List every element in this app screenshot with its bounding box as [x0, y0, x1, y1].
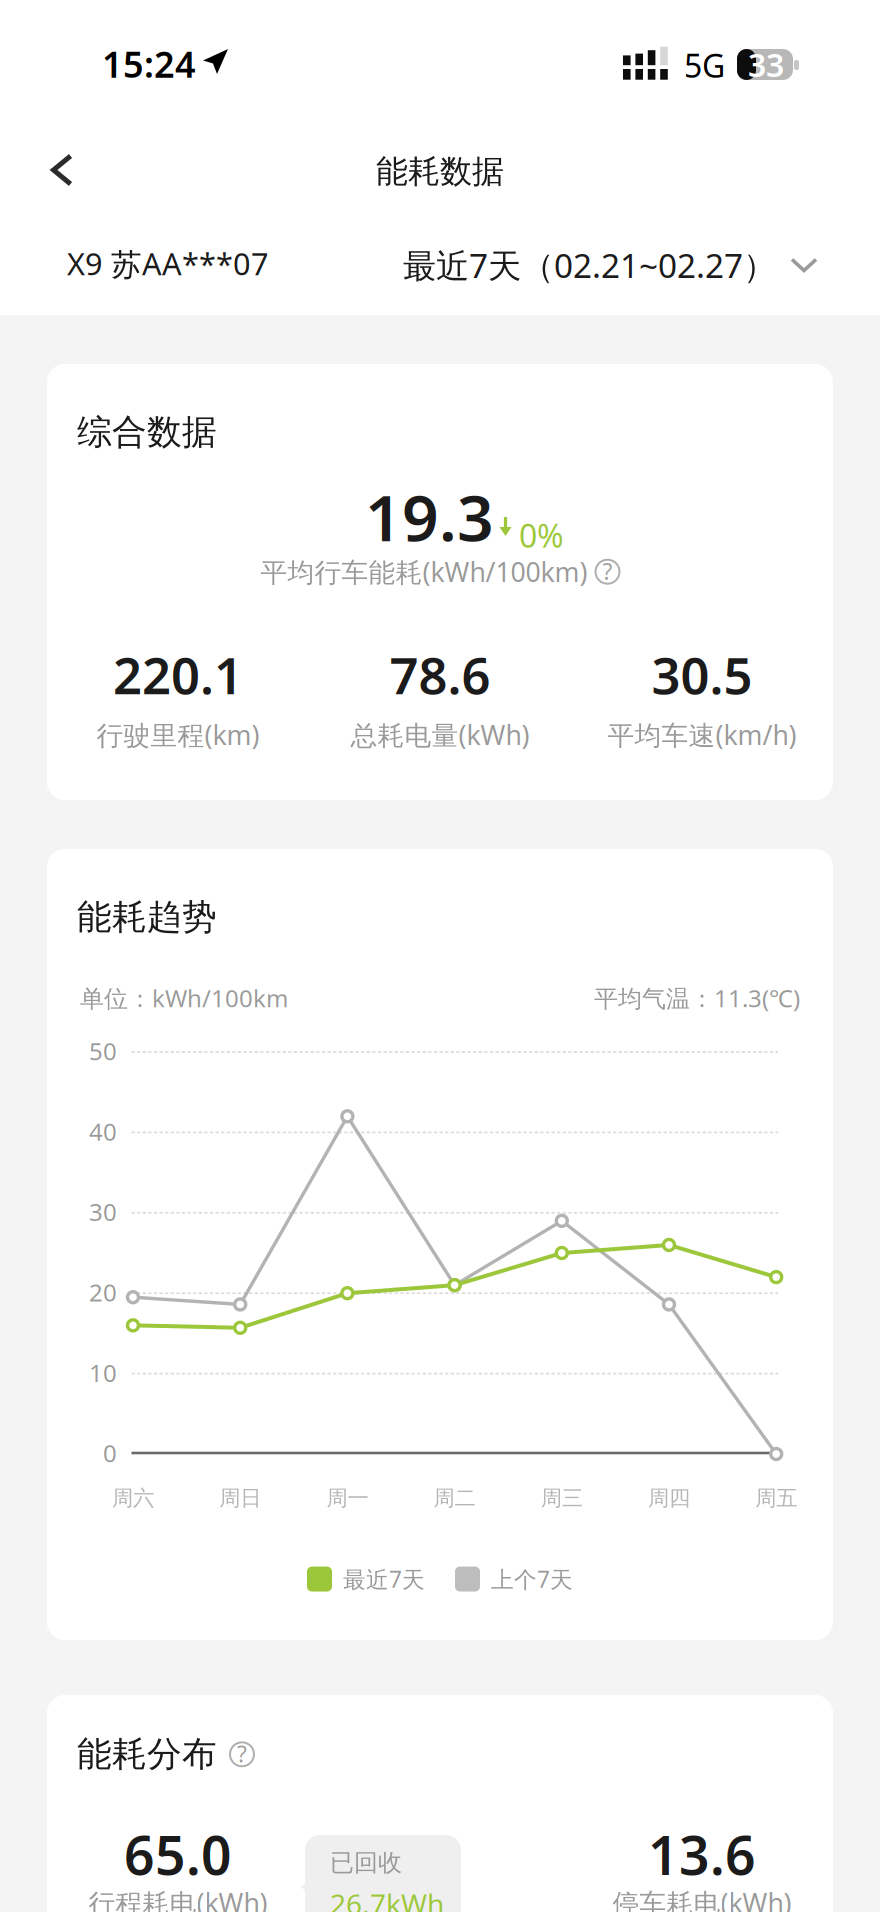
staticText: 能耗数据	[376, 152, 504, 191]
staticText: 5G	[684, 44, 725, 86]
staticText: 50	[89, 1035, 117, 1067]
staticText: 能耗趋势	[77, 896, 217, 939]
staticText: 220.1	[113, 641, 243, 708]
staticText: 周日	[219, 1485, 261, 1511]
staticText: 26.7kWh	[330, 1885, 444, 1912]
staticText: 周五	[755, 1485, 797, 1511]
staticText: 行驶里程(km)	[96, 717, 259, 752]
staticText: 20	[89, 1276, 117, 1308]
staticText: 总耗电量(kWh)	[350, 717, 529, 752]
button[interactable]: 最近7天（02.21~02.27）	[403, 235, 818, 295]
staticText: 上个7天	[491, 1564, 573, 1594]
staticText: 33	[748, 43, 784, 86]
staticText: ?	[237, 1739, 247, 1769]
staticText: 30	[89, 1196, 117, 1228]
staticText: 最近7天（02.21~02.27）	[403, 243, 776, 287]
staticText: 行程耗电(kWh)	[88, 1885, 267, 1912]
staticText: 19.3	[365, 474, 494, 559]
staticText: X9 苏AA***07	[67, 243, 269, 284]
staticText: 65.0	[124, 1819, 232, 1890]
staticText: 15:24	[102, 40, 196, 88]
staticText: 13.6	[648, 1819, 756, 1890]
staticText: 周一	[326, 1485, 368, 1511]
staticText: 平均车速(km/h)	[607, 717, 796, 752]
staticText: 周二	[434, 1485, 476, 1511]
staticText: 30.5	[651, 641, 752, 708]
staticText: 已回收	[330, 1848, 402, 1877]
staticText: 平均行车能耗(kWh/100km)	[260, 554, 587, 589]
staticText: 停车耗电(kWh)	[612, 1885, 791, 1912]
staticText: 单位：kWh/100km	[80, 982, 288, 1014]
staticText: 10	[89, 1357, 117, 1389]
staticText: 周四	[648, 1485, 690, 1511]
staticText: 综合数据	[77, 411, 217, 454]
staticText: 78.6	[389, 641, 490, 708]
staticText: 能耗分布	[77, 1733, 217, 1776]
staticText: 周六	[112, 1485, 154, 1511]
staticText: 40	[89, 1115, 117, 1147]
staticText: 最近7天	[343, 1564, 425, 1594]
staticText: 平均气温：11.3(℃)	[594, 982, 800, 1014]
staticText: 周三	[541, 1485, 583, 1511]
staticText: 0%	[519, 514, 564, 556]
staticText: ?	[602, 556, 612, 586]
button[interactable]: 返回	[24, 132, 100, 208]
staticText: 0	[103, 1437, 117, 1469]
